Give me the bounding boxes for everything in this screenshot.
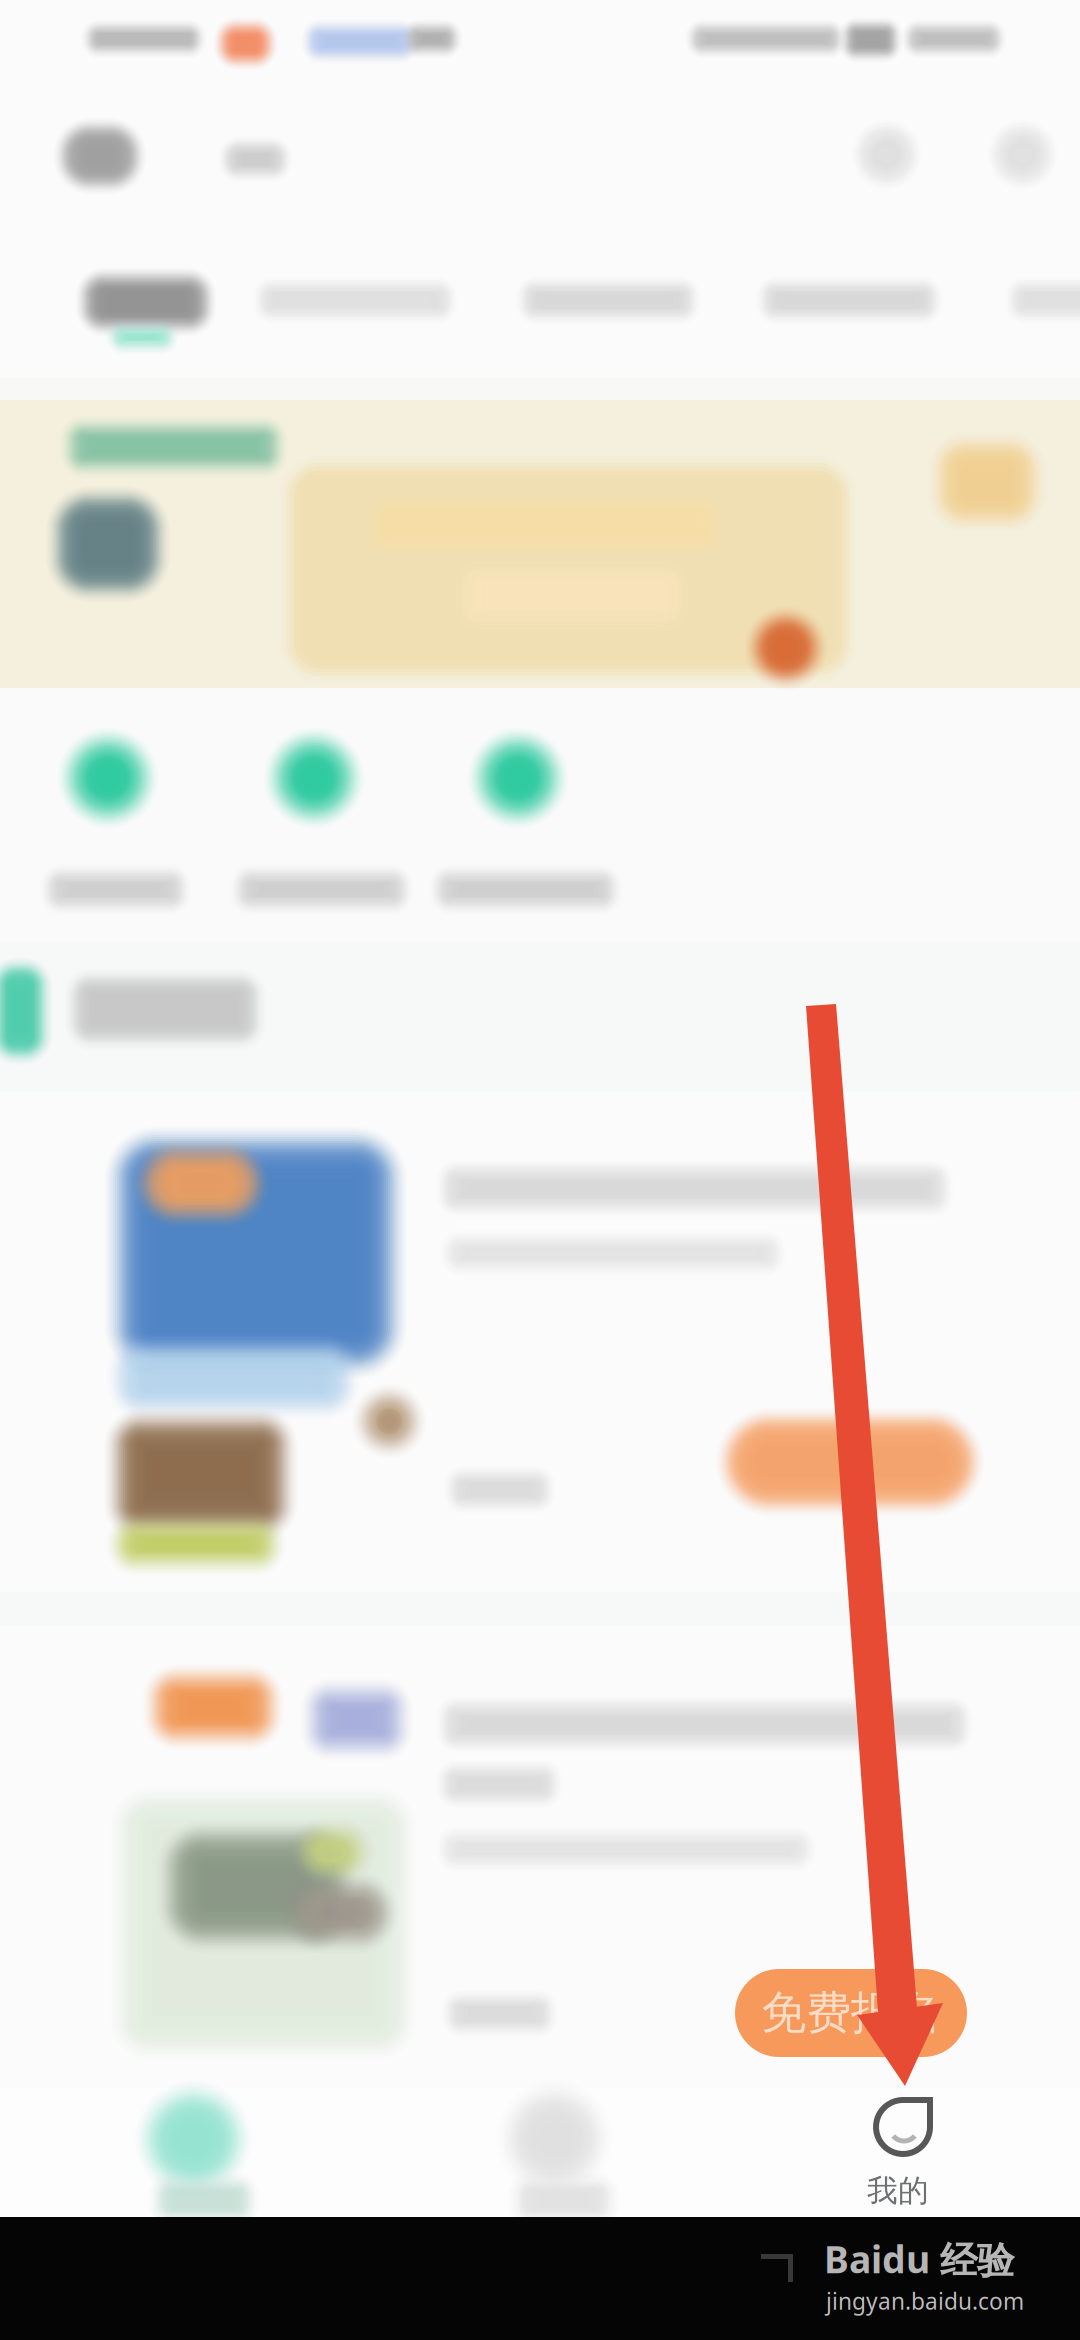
button[interactable]: Search [0, 0, 110, 104]
button[interactable]: 我的 [0, 0, 300, 150]
button[interactable]: 免费报名 [0, 0, 1080, 470]
staticText: 免费报名 [761, 1985, 941, 2041]
button[interactable] [0, 0, 320, 110]
button[interactable]: Home [0, 0, 300, 150]
staticText: Baidu 经验 [824, 2234, 1014, 2284]
button[interactable]: Courses [0, 0, 300, 150]
button[interactable] [0, 0, 192, 200]
button[interactable] [0, 0, 212, 104]
staticText: 我的 [867, 2172, 929, 2210]
button[interactable] [0, 0, 192, 200]
button[interactable] [0, 0, 212, 104]
button[interactable] [0, 0, 170, 120]
button[interactable] [0, 0, 1080, 500]
button[interactable] [0, 0, 1080, 288]
button[interactable] [0, 0, 116, 104]
button[interactable] [0, 0, 230, 104]
staticText: jingyan.baidu.com [826, 2286, 1024, 2316]
button[interactable]: Notifications [0, 0, 110, 104]
button[interactable] [0, 0, 197, 200]
